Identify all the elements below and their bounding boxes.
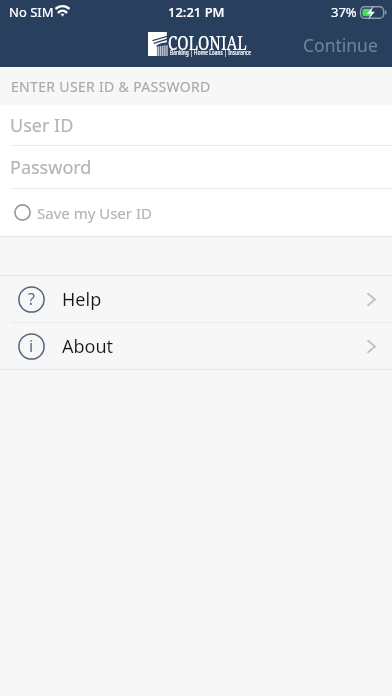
- button[interactable]: Continue: [289, 24, 392, 66]
- staticText: COLONIAL: [168, 29, 247, 56]
- staticText: No SIM: [9, 3, 54, 21]
- staticText: Password: [10, 155, 92, 180]
- staticText: Help: [62, 287, 102, 312]
- staticText: Banking | Home Loans | Insurance: [170, 48, 252, 58]
- button[interactable]: ?: [0, 276, 392, 322]
- staticText: About: [62, 334, 114, 359]
- staticText: User ID: [10, 113, 74, 138]
- staticText: 12:21 PM: [168, 3, 225, 21]
- staticText: ENTER USER ID & PASSWORD: [11, 77, 211, 96]
- button[interactable]: Save my User ID: [0, 189, 392, 236]
- staticText: i: [29, 335, 34, 357]
- button[interactable]: i: [0, 323, 392, 369]
- button[interactable]: Password: [0, 146, 392, 189]
- button[interactable]: User ID: [0, 105, 392, 146]
- staticText: 37%: [331, 3, 357, 21]
- staticText: ?: [28, 288, 35, 310]
- staticText: Continue: [303, 33, 378, 57]
- staticText: Save my User ID: [37, 203, 152, 223]
